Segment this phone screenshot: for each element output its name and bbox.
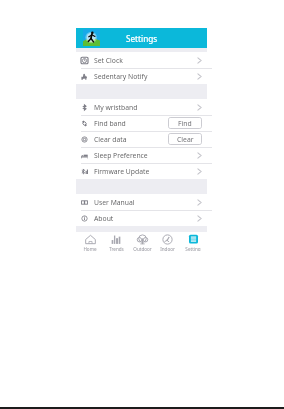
button[interactable]: Clear data	[76, 131, 207, 147]
staticText: About	[94, 214, 114, 223]
staticText: Trends	[109, 246, 124, 251]
button[interactable]: Set Clock	[76, 52, 207, 68]
staticText: Indoor	[160, 246, 175, 251]
staticText: Firmware Update	[94, 167, 150, 176]
button[interactable]: Firmware Update	[76, 163, 207, 179]
staticText: Set Clock	[94, 56, 123, 65]
staticText: Outdoor	[133, 246, 152, 251]
button[interactable]: Clear	[168, 133, 202, 145]
staticText: Find	[178, 119, 192, 128]
staticText: Sedentary Notify	[94, 72, 148, 81]
staticText: My wristband	[94, 103, 138, 112]
staticText: Sleep Preference	[94, 151, 148, 160]
staticText: User Manual	[94, 198, 135, 207]
button[interactable]: Outdoor	[130, 232, 154, 251]
staticText: Settings	[126, 33, 158, 44]
staticText: Home	[83, 246, 97, 251]
button[interactable]: Sedentary Notify	[76, 68, 207, 84]
button[interactable]: Sleep Preference	[76, 147, 207, 163]
button[interactable]: User Manual	[76, 194, 207, 210]
button[interactable]: App icon	[83, 29, 100, 46]
button[interactable]: Setting	[181, 232, 205, 251]
button[interactable]: My wristband	[76, 99, 207, 115]
button[interactable]: Find	[168, 117, 202, 129]
staticText: Setting	[185, 246, 201, 251]
button[interactable]: Trends	[104, 232, 128, 251]
staticText: Clear data	[94, 135, 127, 144]
button[interactable]: About	[76, 210, 207, 226]
staticText: Clear	[177, 135, 194, 144]
button[interactable]: Find band	[76, 115, 207, 131]
staticText: Find band	[94, 119, 126, 128]
button[interactable]: Indoor	[155, 232, 179, 251]
button[interactable]: Home	[78, 232, 102, 251]
